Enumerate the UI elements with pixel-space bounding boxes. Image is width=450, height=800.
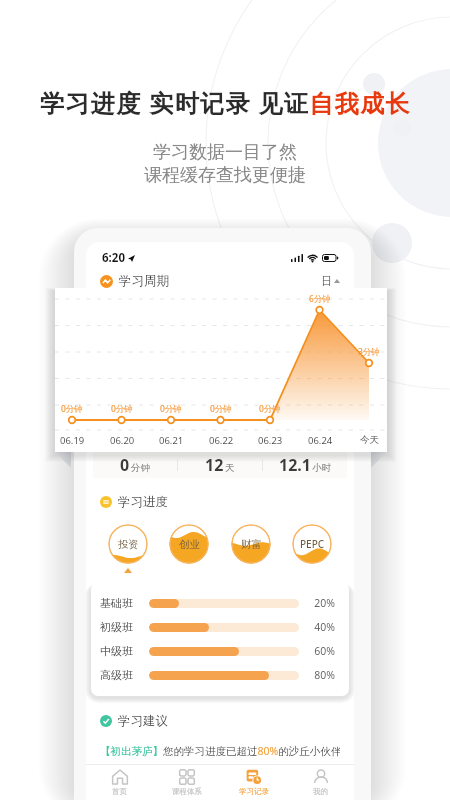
staticText: 基础班	[100, 596, 133, 610]
button[interactable]: 学习周期	[100, 270, 340, 292]
staticText: 高级班	[100, 668, 133, 682]
staticText: 中级班	[100, 644, 133, 658]
button[interactable]: 首页	[86, 765, 153, 800]
staticText: 0分钟	[210, 403, 232, 415]
staticText: 【初出茅庐】您的学习进度已超过80%的沙丘小伙伴	[100, 744, 340, 758]
staticText: 学习数据一目了然	[153, 141, 297, 164]
staticText: 0分钟	[160, 403, 182, 415]
staticText: 学习进度 实时记录 见证自我成长	[40, 86, 411, 119]
button[interactable]: 我的	[287, 765, 354, 800]
staticText: PEPC	[300, 537, 325, 551]
staticText: 06.24	[308, 434, 333, 447]
button[interactable]: 学习进度	[100, 491, 340, 513]
button[interactable]: PEPC	[292, 524, 332, 564]
button[interactable]: 学习记录	[220, 765, 287, 800]
staticText: 20%	[309, 596, 335, 610]
staticText: 日	[321, 274, 332, 288]
button[interactable]: 学习建议	[100, 710, 340, 732]
staticText: 6分钟	[309, 293, 331, 305]
staticText: 12	[205, 454, 224, 476]
staticText: 课程缓存查找更便捷	[144, 164, 306, 187]
button[interactable]: 课程体系	[153, 765, 220, 800]
staticText: 6:20	[102, 250, 125, 266]
staticText: 06.21	[159, 434, 184, 447]
staticText: 06.23	[258, 434, 283, 447]
staticText: 财富	[241, 538, 262, 551]
staticText: 学习进度	[118, 494, 168, 510]
staticText: 创业	[179, 538, 200, 551]
staticText: 分钟	[131, 462, 150, 474]
staticText: 06.20	[110, 434, 135, 447]
staticText: 初级班	[100, 620, 133, 634]
button[interactable]: 投资	[108, 524, 148, 564]
staticText: 我的	[313, 787, 328, 796]
staticText: 12.1	[279, 454, 311, 476]
staticText: 0	[120, 454, 130, 476]
staticText: 天	[225, 462, 235, 474]
staticText: 学习周期	[119, 273, 169, 289]
staticText: 60%	[309, 644, 335, 658]
staticText: 0分钟	[111, 403, 133, 415]
staticText: 投资	[118, 538, 139, 551]
staticText: 40%	[309, 620, 335, 634]
staticText: 06.19	[60, 434, 85, 447]
staticText: 课程体系	[172, 787, 202, 796]
staticText: 学习建议	[118, 713, 168, 729]
staticText: 06.22	[209, 434, 234, 447]
staticText: 3分钟	[358, 346, 380, 358]
staticText: 今天	[360, 434, 379, 446]
staticText: 80%	[309, 668, 335, 682]
button[interactable]: 创业	[169, 524, 209, 564]
staticText: 0分钟	[61, 403, 83, 415]
staticText: 首页	[112, 787, 127, 796]
button[interactable]: 财富	[231, 524, 271, 564]
staticText: 学习记录	[239, 787, 269, 796]
staticText: 小时	[312, 462, 331, 474]
staticText: 0分钟	[259, 403, 281, 415]
